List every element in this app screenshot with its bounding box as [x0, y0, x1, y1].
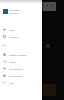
staticText: Noter application — [9, 68, 23, 70]
staticText: Mon compte — [9, 9, 20, 11]
staticText: Paramètres — [9, 36, 19, 38]
button[interactable]: Partager — [0, 58, 42, 65]
staticText: Plus applications — [9, 75, 23, 77]
staticText: Sortir — [9, 82, 14, 84]
staticText: Favoris — [9, 29, 15, 31]
button[interactable]: Sortir — [0, 79, 42, 86]
button[interactable]: Cast — [47, 5, 49, 7]
button[interactable]: Paramètres — [0, 33, 42, 40]
staticText: nom@mail.fr — [9, 12, 19, 14]
button[interactable]: Plus applications — [0, 72, 42, 79]
staticText: Partager — [9, 61, 16, 63]
staticText: Autres — [2, 45, 7, 47]
button[interactable]: Noter application — [0, 65, 42, 72]
staticText: Politique de confident. — [9, 54, 27, 56]
button[interactable]: Favoris — [0, 26, 42, 33]
button[interactable]: Politique de confident. — [0, 51, 42, 58]
